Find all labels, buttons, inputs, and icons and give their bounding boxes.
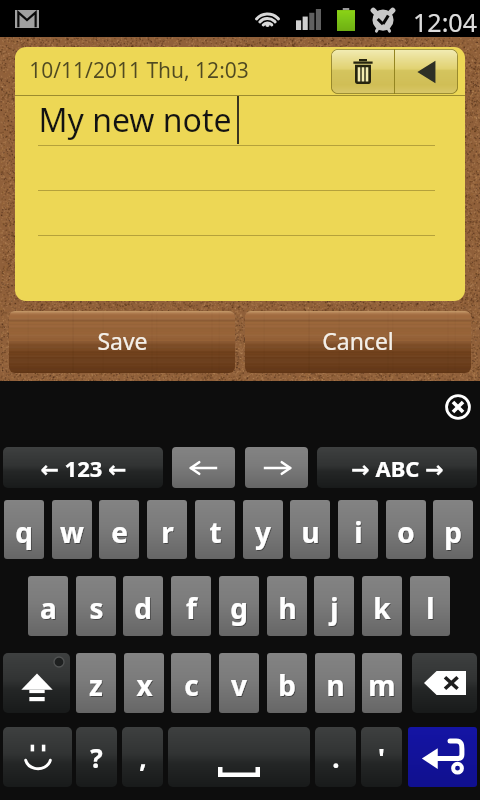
button[interactable]: Emoji [3,727,72,787]
button[interactable]: d [123,576,163,636]
staticText: r [161,513,174,551]
staticText: . [332,740,340,775]
staticText: h [278,589,297,627]
staticText: s [89,589,104,627]
staticText: w [60,513,84,551]
button[interactable]: f [171,576,211,636]
staticText: r [162,514,175,552]
staticText: ← 123 ← [40,453,127,483]
staticText: ' [378,740,385,775]
button[interactable]: r [147,500,187,559]
button[interactable]: → ABC → [317,447,477,488]
staticText: c [185,667,200,705]
button[interactable]: Save [9,311,235,373]
staticText: d [134,589,152,627]
button[interactable]: g [219,576,259,636]
staticText: s [90,590,105,628]
button[interactable]: o [386,500,426,559]
staticText: f [186,589,197,627]
button[interactable]: n [315,653,355,713]
staticText: t [210,514,223,552]
button[interactable]: c [171,653,211,713]
button[interactable]: h [267,576,307,636]
button[interactable]: Move cursor right [245,447,308,488]
staticText: Cancel [322,325,394,356]
button[interactable]: y [243,500,283,559]
staticText: ? [90,740,103,775]
staticText: 10/11/2011 Thu, 12:03 [29,56,249,85]
staticText: e [112,514,129,552]
button[interactable]: b [267,653,307,713]
button[interactable]: Hide keyboard [444,393,472,421]
button[interactable]: l [410,576,450,636]
staticText: m [368,666,396,704]
staticText: t [209,513,222,551]
button[interactable]: ' [361,727,402,787]
button[interactable]: j [314,576,354,636]
staticText: q [15,513,33,551]
button[interactable]: a [28,576,68,636]
staticText: p [445,514,463,552]
button[interactable]: Shift [3,653,70,713]
button[interactable]: Space [168,727,310,787]
staticText: f [187,590,198,628]
button[interactable]: s [76,576,116,636]
button[interactable]: ? [76,727,117,787]
staticText: j [331,590,340,628]
staticText: v [232,667,248,705]
staticText: b [278,666,296,704]
staticText: n [326,666,345,704]
button[interactable]: Move cursor left [172,447,235,488]
staticText: o [397,513,415,551]
button[interactable]: , [122,727,163,787]
button[interactable]: v [219,653,259,713]
staticText: y [256,514,272,552]
staticText: i [354,513,363,551]
staticText: l [427,590,436,628]
button[interactable]: ← 123 ← [3,447,163,488]
button[interactable]: k [362,576,402,636]
staticText: c [184,666,199,704]
staticText: n [327,667,346,705]
staticText: a [41,590,58,628]
button[interactable]: x [124,653,164,713]
staticText: m [369,667,397,705]
button[interactable]: p [433,500,473,559]
staticText: Save [97,325,148,356]
staticText: a [40,589,57,627]
button[interactable]: w [52,500,92,559]
button[interactable]: q [4,500,44,559]
button[interactable]: u [290,500,330,559]
button[interactable]: m [362,653,402,713]
staticText: g [230,589,248,627]
staticText: i [355,514,364,552]
staticText: w [61,514,85,552]
staticText: z [90,667,104,705]
button[interactable]: Enter [408,727,477,787]
staticText: p [444,513,462,551]
button[interactable]: Delete note [331,49,394,94]
staticText: 12:04 [413,5,477,39]
button[interactable]: e [99,500,139,559]
staticText: u [301,513,320,551]
staticText: q [16,514,34,552]
staticText: k [374,590,392,628]
staticText: h [279,590,298,628]
staticText: → ABC → [351,453,444,483]
button[interactable]: . [315,727,356,787]
staticText: v [231,666,247,704]
button[interactable]: z [76,653,116,713]
staticText: k [373,589,391,627]
staticText: o [398,514,416,552]
button[interactable]: Back [395,49,458,94]
button[interactable]: i [338,500,378,559]
staticText: , [139,740,147,775]
staticText: u [302,514,321,552]
staticText: j [330,589,339,627]
button[interactable]: Backspace [412,653,477,713]
staticText: l [426,589,435,627]
staticText: g [231,590,249,628]
button[interactable]: t [195,500,235,559]
button[interactable]: Cancel [245,311,471,373]
staticText: b [279,667,297,705]
